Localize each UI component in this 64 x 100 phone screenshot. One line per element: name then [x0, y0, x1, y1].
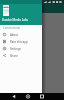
button[interactable]: Settings — [0, 45, 42, 52]
button[interactable]: Share — [0, 52, 42, 59]
button[interactable]: Home — [21, 93, 35, 100]
staticText: Buzzbe Media Labs — [2, 18, 28, 22]
button[interactable]: Rate this app — [0, 38, 42, 45]
staticText: Settings — [10, 47, 21, 51]
button[interactable]: Back — [7, 93, 21, 100]
staticText: About — [10, 33, 19, 37]
staticText: Share — [10, 54, 18, 58]
button[interactable]: Recents — [35, 93, 49, 100]
staticText: Communicate — [3, 26, 21, 30]
staticText: Rate this app — [10, 40, 28, 44]
button[interactable]: About — [0, 31, 42, 38]
